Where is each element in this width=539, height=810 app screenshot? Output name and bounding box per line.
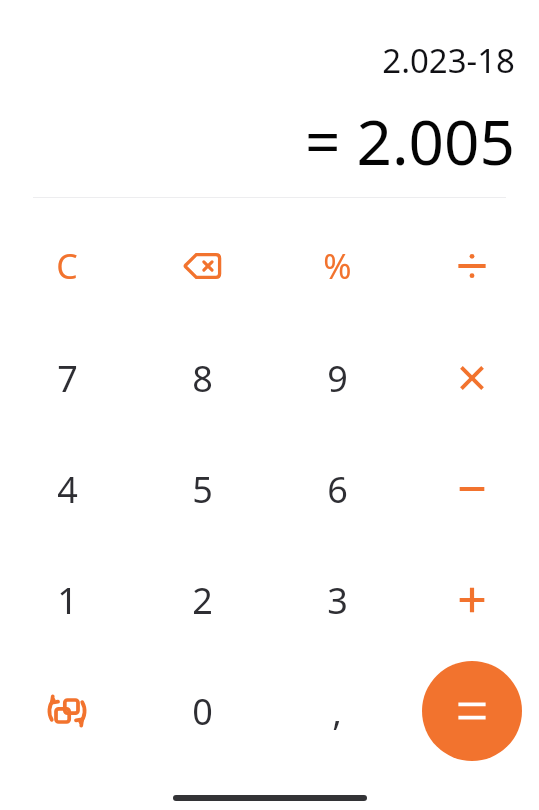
button[interactable]: Backspace: [154, 218, 250, 314]
staticText: = 2.005: [304, 99, 515, 183]
button[interactable]: Clear: [19, 218, 115, 314]
staticText: 7: [57, 354, 78, 403]
staticText: ,: [332, 687, 342, 736]
button[interactable]: 8: [154, 330, 250, 426]
button[interactable]: Equals: [422, 661, 522, 761]
staticText: 9: [327, 354, 348, 403]
staticText: 2: [192, 576, 213, 625]
button[interactable]: Multiply: [424, 330, 520, 426]
staticText: 4: [57, 465, 78, 514]
button[interactable]: 9: [289, 330, 385, 426]
staticText: %: [323, 243, 352, 289]
button[interactable]: Plus: [424, 552, 520, 648]
button[interactable]: Divide: [424, 218, 520, 314]
button[interactable]: 3: [289, 552, 385, 648]
staticText: 0: [192, 687, 213, 736]
button[interactable]: Minus: [424, 441, 520, 537]
staticText: 5: [192, 465, 213, 514]
button[interactable]: Percent: [289, 218, 385, 314]
staticText: C: [56, 243, 78, 289]
button[interactable]: 7: [19, 330, 115, 426]
button[interactable]: Decimal separator: [289, 663, 385, 759]
staticText: 3: [327, 576, 348, 625]
button[interactable]: Unit converter: [19, 663, 115, 759]
staticText: 1: [57, 576, 78, 625]
staticText: 6: [327, 465, 348, 514]
button[interactable]: 1: [19, 552, 115, 648]
button[interactable]: 2: [154, 552, 250, 648]
button[interactable]: 4: [19, 441, 115, 537]
button[interactable]: 6: [289, 441, 385, 537]
staticText: 8: [192, 354, 213, 403]
button[interactable]: 5: [154, 441, 250, 537]
button[interactable]: 0: [154, 663, 250, 759]
staticText: 2.023-18: [382, 38, 515, 83]
